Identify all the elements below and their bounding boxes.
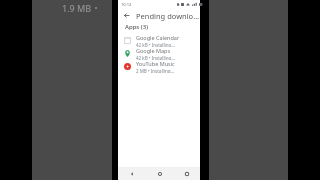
button[interactable]: Google Maps (118, 47, 200, 60)
button[interactable]: Google Calendar (118, 34, 200, 47)
staticText: Apps (3) (125, 23, 149, 31)
button[interactable]: Back (118, 167, 146, 180)
staticText: 1.9 MB (62, 2, 92, 14)
staticText: 10:12 (121, 2, 132, 7)
staticText: 2 MB • Installing… (136, 68, 174, 73)
staticText: 42 kB • Installing… (136, 42, 175, 47)
button[interactable]: Recent apps (173, 167, 200, 180)
staticText: Google Calendar (136, 34, 180, 41)
staticText: 42 kB • Installing… (136, 55, 175, 60)
staticText: YouTube Music (136, 60, 175, 67)
button[interactable]: Home (146, 167, 173, 180)
button[interactable]: Back (121, 10, 132, 21)
button[interactable]: YouTube Music (118, 60, 200, 73)
staticText: Pending downloads (136, 11, 200, 21)
staticText: Google Maps (136, 47, 171, 54)
